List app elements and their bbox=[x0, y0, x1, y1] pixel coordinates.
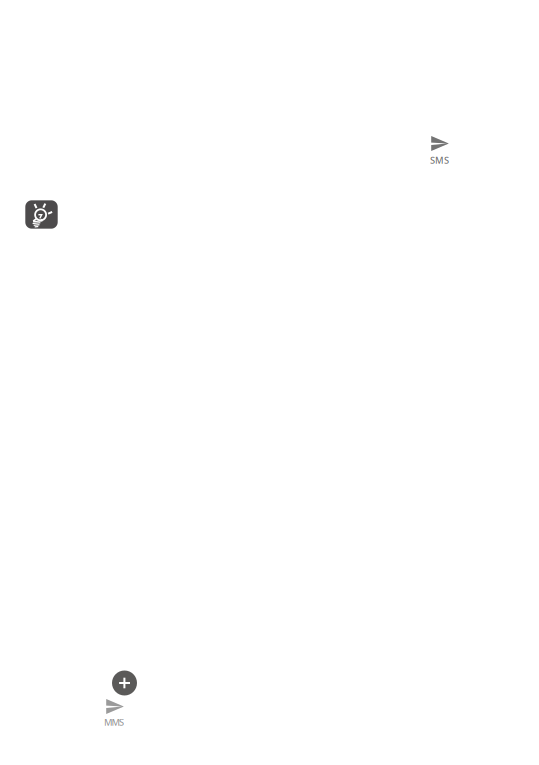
button[interactable]: SMS bbox=[419, 134, 459, 170]
staticText: SMS bbox=[430, 154, 449, 166]
button[interactable]: Add bbox=[112, 670, 137, 695]
button[interactable]: MMS bbox=[94, 697, 134, 733]
button[interactable]: Tips bbox=[25, 200, 58, 229]
staticText: MMS bbox=[104, 716, 124, 728]
